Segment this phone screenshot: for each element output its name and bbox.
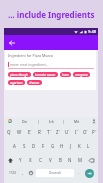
button[interactable]: Shift bbox=[4, 153, 16, 167]
button[interactable]: E bbox=[24, 125, 34, 139]
button[interactable]: Enter bbox=[82, 167, 97, 179]
button[interactable]: tomato sauce bbox=[33, 72, 58, 77]
staticText: X bbox=[29, 157, 32, 163]
staticText: 4 bbox=[40, 128, 42, 131]
staticText: enter next ingredient... bbox=[10, 62, 49, 67]
button[interactable]: N bbox=[65, 153, 75, 167]
button[interactable]: pizza dough bbox=[8, 72, 31, 77]
staticText: ... include Ingredients bbox=[8, 9, 95, 20]
button[interactable]: Die bbox=[20, 119, 30, 124]
staticText: 0 bbox=[95, 128, 97, 131]
button[interactable]: Y bbox=[16, 153, 25, 167]
staticText: W bbox=[17, 129, 22, 135]
button[interactable]: Back bbox=[6, 37, 17, 48]
button[interactable]: ham bbox=[60, 72, 71, 77]
staticText: tomato sauce bbox=[35, 73, 56, 77]
staticText: cheese bbox=[29, 81, 40, 85]
staticText: 9:48 bbox=[88, 29, 96, 34]
staticText: 8 bbox=[77, 128, 79, 131]
button[interactable]: A bbox=[9, 139, 19, 153]
staticText: 9 bbox=[86, 128, 88, 131]
staticText: E bbox=[28, 129, 31, 135]
staticText: H bbox=[60, 143, 64, 149]
button[interactable]: I bbox=[71, 125, 80, 139]
staticText: Ingredient for Pizza Mozza bbox=[8, 53, 53, 58]
button[interactable]: R bbox=[34, 125, 44, 139]
staticText: J bbox=[70, 143, 72, 149]
staticText: A bbox=[13, 143, 16, 149]
staticText: V bbox=[49, 157, 52, 163]
button[interactable]: T bbox=[44, 125, 53, 139]
staticText: P bbox=[92, 129, 95, 135]
button[interactable]: H bbox=[57, 139, 66, 153]
button[interactable]: K bbox=[75, 139, 84, 153]
button[interactable]: L bbox=[84, 139, 93, 153]
button[interactable]: , bbox=[19, 167, 26, 179]
button[interactable]: W bbox=[14, 125, 24, 139]
staticText: 3 bbox=[30, 128, 32, 131]
staticText: Ich bbox=[49, 119, 54, 124]
staticText: S bbox=[23, 143, 26, 149]
staticText: 7 bbox=[68, 128, 70, 131]
staticText: ham bbox=[62, 73, 69, 77]
button[interactable]: Emoji bbox=[26, 167, 35, 179]
button[interactable]: C bbox=[35, 153, 45, 167]
staticText: T bbox=[47, 129, 50, 135]
button[interactable]: B bbox=[55, 153, 65, 167]
staticText: Die bbox=[22, 119, 28, 124]
staticText: ?123 bbox=[9, 171, 16, 175]
staticText: 2 bbox=[20, 128, 22, 131]
staticText: O bbox=[83, 129, 87, 135]
button[interactable]: M bbox=[75, 153, 85, 167]
button[interactable]: Z bbox=[53, 125, 62, 139]
staticText: C bbox=[39, 157, 42, 163]
staticText: . bbox=[78, 170, 80, 176]
staticText: M bbox=[78, 157, 82, 163]
button[interactable]: agaricus bbox=[8, 80, 25, 85]
staticText: B bbox=[59, 157, 62, 163]
button[interactable]: D bbox=[29, 139, 39, 153]
staticText: K bbox=[78, 143, 81, 149]
staticText: U bbox=[65, 129, 69, 135]
button[interactable]: U bbox=[62, 125, 71, 139]
button[interactable]: cheese bbox=[27, 80, 42, 85]
button[interactable]: oregano bbox=[73, 72, 90, 77]
button[interactable]: S bbox=[19, 139, 29, 153]
button[interactable]: J bbox=[66, 139, 75, 153]
button[interactable]: G bbox=[48, 139, 57, 153]
button[interactable]: ?123 bbox=[5, 167, 19, 179]
button[interactable]: V bbox=[45, 153, 55, 167]
staticText: 5 bbox=[50, 128, 52, 131]
staticText: 1 bbox=[10, 128, 12, 131]
staticText: Deutsch bbox=[49, 171, 62, 175]
button[interactable]: F bbox=[39, 139, 48, 153]
button[interactable]: Deutsch bbox=[36, 169, 74, 177]
staticText: L bbox=[87, 143, 90, 149]
button[interactable]: P bbox=[89, 125, 98, 139]
staticText: oregano bbox=[75, 73, 88, 77]
button[interactable]: Voice input bbox=[90, 117, 98, 125]
button[interactable]: X bbox=[25, 153, 35, 167]
staticText: N bbox=[68, 157, 72, 163]
staticText: , bbox=[22, 170, 24, 176]
staticText: G bbox=[51, 143, 55, 149]
staticText: pizza dough bbox=[10, 73, 29, 77]
staticText: 6 bbox=[59, 128, 61, 131]
button[interactable]: O bbox=[80, 125, 89, 139]
staticText: Z bbox=[56, 129, 59, 135]
button[interactable]: Backspace bbox=[85, 153, 98, 167]
button[interactable]: Ich bbox=[47, 119, 56, 124]
staticText: Mit bbox=[74, 119, 80, 124]
button[interactable]: Mit bbox=[72, 119, 82, 124]
staticText: Y bbox=[19, 157, 22, 163]
staticText: F bbox=[42, 143, 45, 149]
staticText: R bbox=[38, 129, 41, 135]
staticText: Q bbox=[7, 129, 11, 135]
staticText: D bbox=[32, 143, 36, 149]
button[interactable]: Q bbox=[4, 125, 14, 139]
staticText: I bbox=[75, 129, 77, 135]
staticText: agaricus bbox=[10, 81, 23, 85]
